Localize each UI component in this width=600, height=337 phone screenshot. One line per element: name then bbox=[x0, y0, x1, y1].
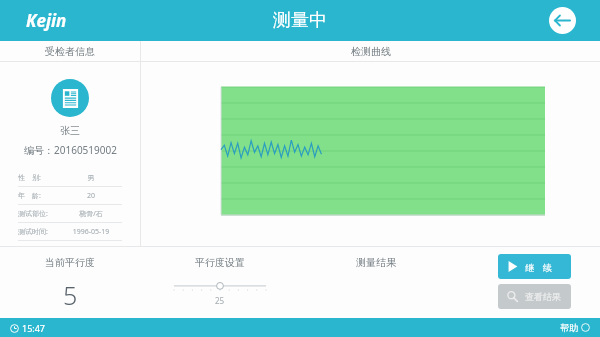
button[interactable]: 继 续 bbox=[498, 254, 571, 279]
staticText: 测量中 bbox=[273, 9, 327, 32]
staticText: 测试部位: bbox=[18, 209, 60, 219]
staticText: 5 bbox=[63, 278, 78, 312]
staticText: 平行度设置 bbox=[195, 256, 245, 269]
staticText: 15:47 bbox=[22, 322, 46, 334]
button[interactable]: 帮助 bbox=[560, 322, 590, 333]
staticText: 男 bbox=[60, 173, 122, 182]
staticText: 20 bbox=[60, 191, 122, 201]
staticText: 帮助 bbox=[560, 322, 578, 333]
staticText: Kejin bbox=[26, 9, 67, 32]
staticText: 继 续 bbox=[525, 261, 552, 273]
staticText: 1996-05-19 bbox=[60, 227, 122, 237]
staticText: 测试时间: bbox=[18, 227, 60, 237]
staticText: 检测曲线 bbox=[351, 45, 391, 58]
staticText: 性 别: bbox=[18, 173, 60, 183]
staticText: 查看结果 bbox=[525, 291, 561, 302]
staticText: 张三 bbox=[60, 124, 80, 137]
staticText: 25 bbox=[215, 295, 225, 306]
staticText: 测量结果 bbox=[356, 256, 396, 269]
button[interactable]: Back bbox=[549, 7, 576, 34]
staticText: 受检者信息 bbox=[45, 45, 95, 58]
staticText: 桡骨/右 bbox=[60, 209, 122, 219]
button[interactable]: Parallelism slider bbox=[174, 282, 266, 295]
button[interactable]: 查看结果 bbox=[498, 284, 571, 309]
staticText: 当前平行度 bbox=[45, 256, 95, 269]
staticText: 年 龄: bbox=[18, 191, 60, 201]
staticText: 编号：20160519002 bbox=[24, 143, 117, 157]
